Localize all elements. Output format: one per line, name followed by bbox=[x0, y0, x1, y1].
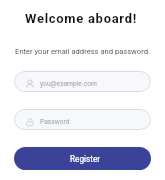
button[interactable]: you@example.com bbox=[14, 71, 151, 92]
staticText: Enter your email address and password. bbox=[15, 47, 150, 56]
button[interactable]: Password bbox=[14, 109, 151, 130]
staticText: Welcome aboard! bbox=[25, 11, 137, 26]
staticText: Register bbox=[70, 154, 100, 164]
staticText: Password bbox=[40, 118, 70, 126]
staticText: you@example.com bbox=[40, 80, 97, 88]
button[interactable]: Register bbox=[14, 147, 151, 170]
